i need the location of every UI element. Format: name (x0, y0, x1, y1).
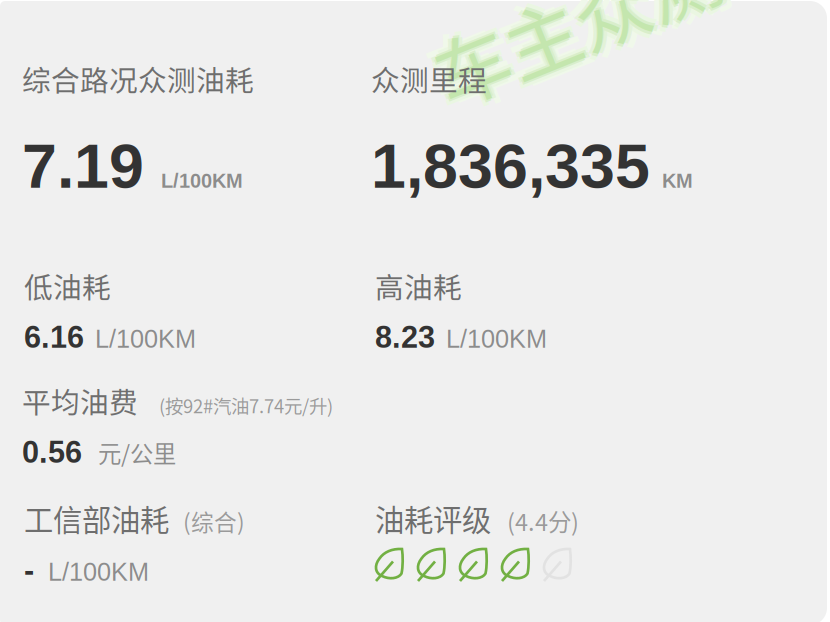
staticText: L/100KM (161, 170, 243, 192)
staticText: 6.16 (24, 320, 84, 354)
staticText: L/100KM (446, 325, 547, 353)
button[interactable]: 综合路况众测油耗 (22, 58, 352, 201)
button[interactable]: 工信部油耗 (24, 497, 354, 587)
staticText: (综合) (183, 505, 245, 537)
staticText: (按92#汽油7.74元/升) (159, 392, 333, 418)
button[interactable]: 高油耗 (375, 265, 705, 354)
staticText: 车主众测 (404, 0, 704, 80)
staticText: 7.19 (22, 131, 144, 201)
staticText: L/100KM (95, 325, 196, 353)
button[interactable]: 油耗评级 (375, 497, 715, 581)
staticText: 车主众测 (400, 0, 700, 79)
staticText: 元/公里 (98, 436, 176, 469)
button[interactable]: 众测里程 (371, 58, 711, 201)
staticText: 车主众测 (411, 0, 711, 87)
staticText: 车主众测 (397, 0, 697, 73)
staticText: 车主众测 (408, 0, 708, 81)
staticText: KM (662, 170, 693, 192)
button[interactable]: 平均油费 (22, 380, 352, 469)
staticText: 8.23 (375, 320, 435, 354)
button[interactable]: 低油耗 (24, 265, 354, 354)
staticText: L/100KM (48, 558, 149, 586)
staticText: 车主众测 (409, 0, 709, 75)
staticText: 平均油费 (22, 380, 138, 421)
staticText: 0.56 (22, 435, 82, 469)
staticText: - (24, 553, 34, 587)
staticText: 高油耗 (375, 265, 462, 306)
staticText: 油耗评级 (375, 497, 491, 539)
staticText: 车主众测 (406, 0, 706, 78)
staticText: 众测里程 (371, 58, 487, 99)
staticText: (4.4分) (507, 504, 579, 538)
staticText: 车主众测 (402, 0, 702, 82)
staticText: 工信部油耗 (24, 497, 169, 539)
staticText: 车主众测 (399, 0, 699, 85)
staticText: 综合路况众测油耗 (22, 58, 254, 99)
staticText: 低油耗 (24, 265, 111, 306)
staticText: 1,836,335 (371, 131, 650, 201)
